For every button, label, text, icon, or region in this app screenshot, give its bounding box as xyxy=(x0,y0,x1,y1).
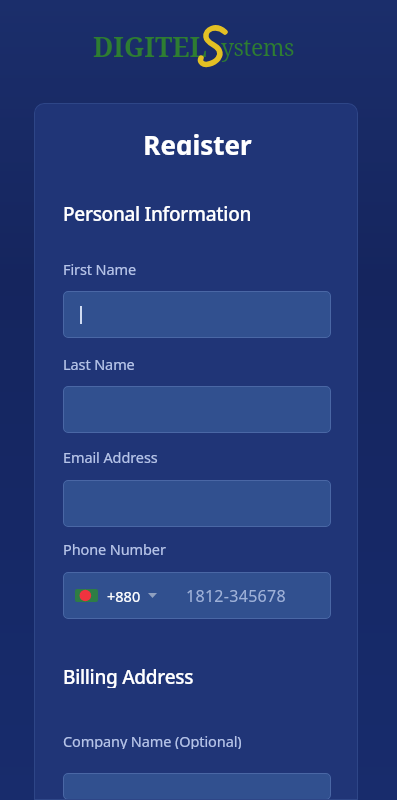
staticText: Company Name (Optional) xyxy=(63,731,242,749)
staticText: Billing Address xyxy=(63,664,194,688)
staticText: 1812-345678 xyxy=(186,585,286,607)
staticText: Last Name xyxy=(63,354,135,372)
button[interactable] xyxy=(63,291,331,338)
button[interactable] xyxy=(63,773,331,800)
staticText: Phone Number xyxy=(63,539,166,557)
staticText: Register xyxy=(143,127,252,155)
staticText: Personal Information xyxy=(63,201,252,225)
staticText: Email Address xyxy=(63,447,158,465)
staticText: DIGITEL xyxy=(93,29,207,65)
staticText: First Name xyxy=(63,259,137,277)
button[interactable] xyxy=(63,386,331,433)
staticText: +880 xyxy=(107,586,141,606)
button[interactable]: +880 xyxy=(63,572,331,619)
button[interactable] xyxy=(63,480,331,527)
staticText: ystems xyxy=(221,31,294,62)
